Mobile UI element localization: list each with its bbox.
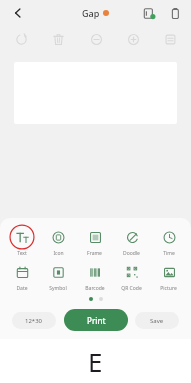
staticText: Save bbox=[150, 317, 164, 325]
button[interactable]: Undo bbox=[85, 28, 107, 50]
button[interactable]: Barcode bbox=[76, 259, 113, 292]
button[interactable]: Print bbox=[64, 309, 128, 331]
staticText: Print bbox=[87, 315, 106, 326]
button[interactable]: Icon bbox=[40, 224, 76, 257]
button[interactable]: Date bbox=[4, 259, 40, 292]
button[interactable]: Time bbox=[150, 224, 187, 257]
button[interactable]: Doodle bbox=[113, 224, 150, 257]
button[interactable]: Frame bbox=[76, 224, 113, 257]
button[interactable]: Back bbox=[8, 3, 28, 23]
staticText: Barcode bbox=[85, 285, 105, 292]
button[interactable]: Symbol bbox=[40, 259, 76, 292]
button[interactable]: Picture bbox=[150, 259, 187, 292]
button[interactable]: Gap bbox=[82, 7, 109, 19]
staticText: Gap bbox=[82, 7, 100, 19]
staticText: Picture bbox=[160, 285, 177, 292]
button[interactable]: QR Code bbox=[113, 259, 150, 292]
button[interactable]: Save bbox=[135, 312, 179, 329]
button[interactable]: Battery bbox=[165, 3, 185, 23]
staticText: QR Code bbox=[121, 285, 142, 292]
staticText: Doodle bbox=[123, 250, 140, 257]
button[interactable]: Rotate bbox=[10, 28, 32, 50]
staticText: E bbox=[88, 344, 103, 379]
staticText: Icon bbox=[53, 250, 64, 257]
button[interactable]: Add bbox=[122, 28, 144, 50]
staticText: Symbol bbox=[49, 285, 67, 292]
staticText: Time bbox=[163, 250, 175, 257]
staticText: Date bbox=[16, 285, 28, 292]
button[interactable]: Text bbox=[4, 224, 40, 257]
button[interactable]: Align bbox=[159, 28, 181, 50]
staticText: Frame bbox=[87, 250, 102, 257]
button[interactable]: 12*30 bbox=[12, 312, 56, 329]
staticText: 12*30 bbox=[25, 317, 43, 325]
button[interactable]: Printer connected bbox=[139, 3, 159, 23]
staticText: Text bbox=[17, 250, 27, 257]
button[interactable]: Delete bbox=[47, 28, 69, 50]
